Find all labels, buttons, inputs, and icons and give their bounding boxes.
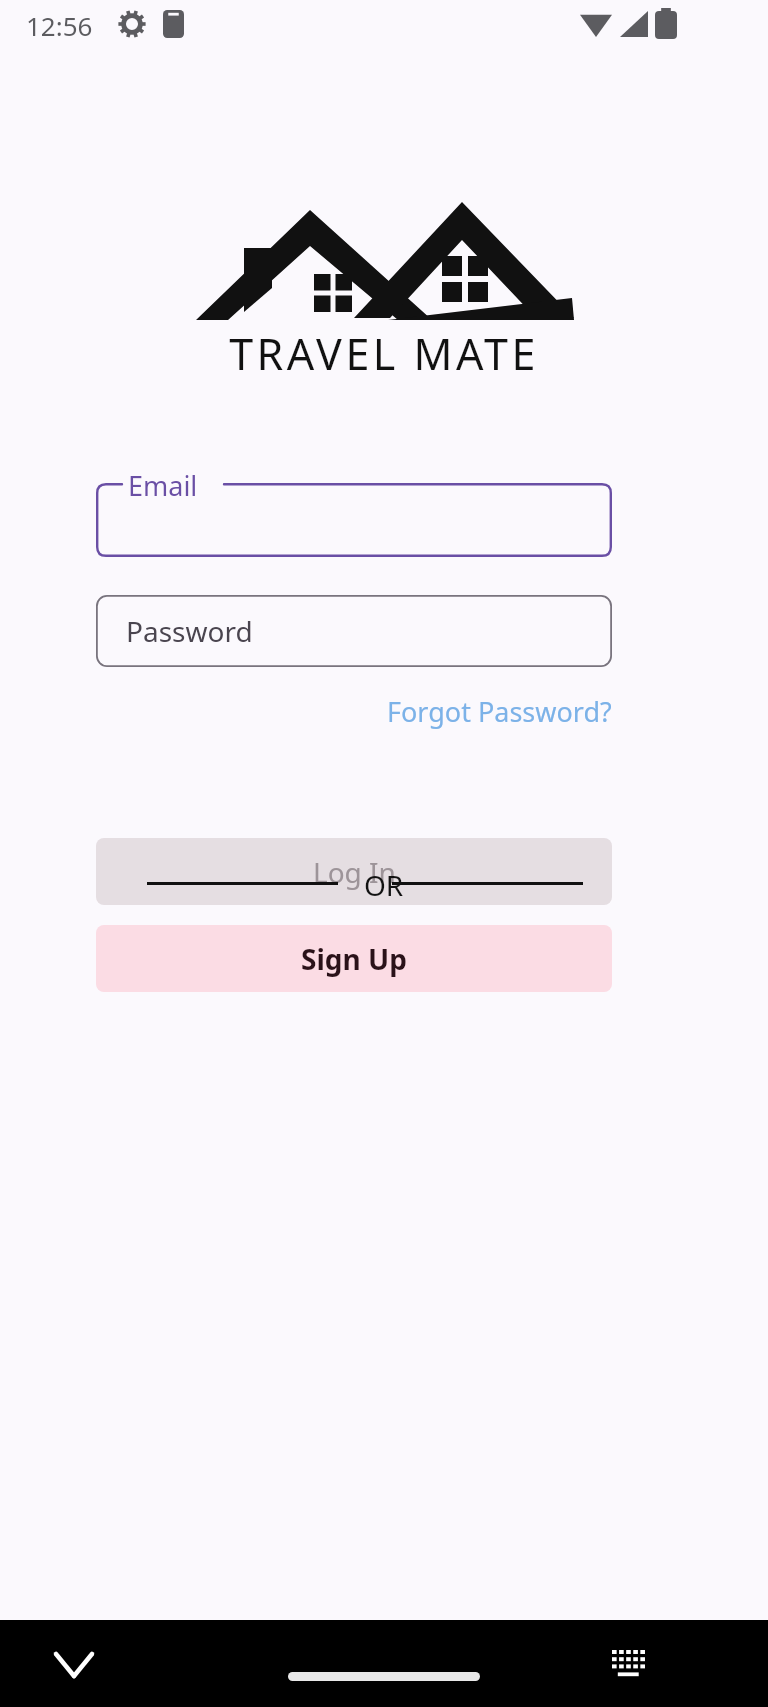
button[interactable]: Log In: [96, 838, 612, 905]
button[interactable]: Password: [96, 595, 612, 667]
button[interactable]: Sign Up: [96, 925, 612, 992]
staticText: Password: [126, 612, 253, 650]
staticText: Email: [128, 467, 198, 504]
staticText: Log In: [313, 853, 396, 891]
staticText: Sign Up: [301, 940, 407, 978]
staticText: TRAVEL MATE: [229, 324, 539, 376]
button[interactable]: Switch keyboard: [612, 1650, 648, 1678]
button[interactable]: Home: [288, 1672, 480, 1681]
button[interactable]: Forgot Password?: [380, 688, 612, 734]
staticText: 12:56: [26, 8, 93, 43]
button[interactable]: Hide keyboard: [56, 1654, 92, 1676]
staticText: Forgot Password?: [387, 693, 612, 730]
button[interactable]: Email: [96, 483, 612, 557]
staticText: OR: [364, 866, 404, 900]
